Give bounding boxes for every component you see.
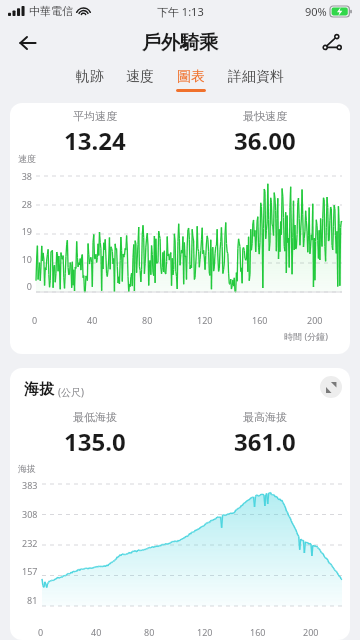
staticText: 81 xyxy=(27,594,38,606)
staticText: 120 xyxy=(197,314,213,326)
staticText: 海拔 xyxy=(24,380,54,399)
staticText: 下午 1:13 xyxy=(157,4,204,19)
staticText: 38 xyxy=(21,170,32,182)
staticText: 200 xyxy=(303,626,319,638)
staticText: 40 xyxy=(91,626,102,638)
staticText: 308 xyxy=(22,508,38,520)
staticText: 速度 xyxy=(18,153,36,164)
button[interactable]: Back xyxy=(10,25,46,61)
staticText: 最快速度 xyxy=(243,109,287,123)
staticText: 0 xyxy=(38,626,44,638)
staticText: 160 xyxy=(250,626,266,638)
staticText: 28 xyxy=(21,198,32,210)
button[interactable]: 圖表 xyxy=(174,68,208,92)
staticText: 361.0 xyxy=(234,425,296,458)
staticText: 157 xyxy=(22,565,38,577)
staticText: 36.00 xyxy=(234,124,296,157)
staticText: 90% xyxy=(305,4,327,19)
staticText: 最低海拔 xyxy=(73,410,117,424)
staticText: 10 xyxy=(21,253,32,265)
staticText: 135.0 xyxy=(64,425,126,458)
staticText: 13.24 xyxy=(64,124,126,157)
staticText: 383 xyxy=(22,479,38,491)
staticText: (公尺) xyxy=(58,385,84,399)
staticText: 232 xyxy=(22,537,38,549)
staticText: 200 xyxy=(307,314,323,326)
button[interactable]: Expand xyxy=(320,376,342,398)
staticText: 80 xyxy=(144,626,155,638)
staticText: 0 xyxy=(32,314,38,326)
staticText: 速度 xyxy=(126,68,154,86)
button[interactable]: 速度 xyxy=(124,68,156,89)
button[interactable]: Share xyxy=(314,25,350,61)
button[interactable]: 詳細資料 xyxy=(226,68,286,89)
staticText: 軌跡 xyxy=(76,68,104,86)
staticText: 時間 (分鐘) xyxy=(10,330,328,342)
staticText: 詳細資料 xyxy=(228,68,284,86)
staticText: 160 xyxy=(252,314,268,326)
staticText: 平均速度 xyxy=(73,109,117,123)
staticText: 80 xyxy=(142,314,153,326)
staticText: 最高海拔 xyxy=(243,410,287,424)
staticText: 海拔 xyxy=(18,463,36,474)
staticText: 0 xyxy=(26,280,32,292)
staticText: 40 xyxy=(87,314,98,326)
staticText: 中華電信 xyxy=(29,4,73,18)
staticText: 120 xyxy=(197,626,213,638)
button[interactable]: 軌跡 xyxy=(74,68,106,89)
staticText: 19 xyxy=(21,225,32,237)
staticText: 圖表 xyxy=(177,68,205,86)
staticText: 戶外騎乘 xyxy=(142,31,218,55)
